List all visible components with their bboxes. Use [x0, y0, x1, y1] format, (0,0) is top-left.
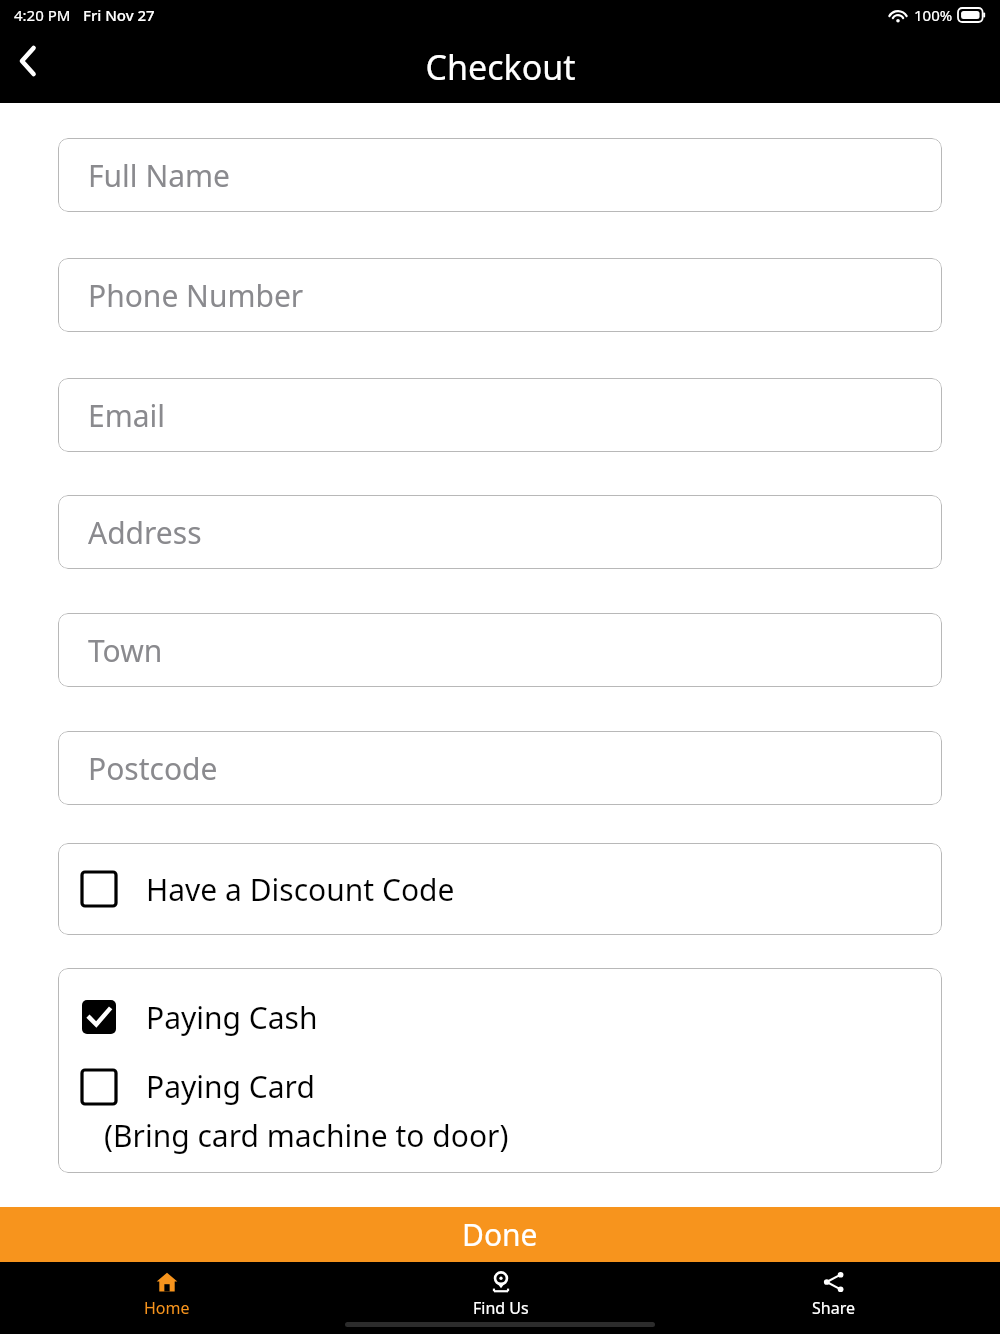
button[interactable]: Done [0, 1207, 1000, 1262]
staticText: Fri Nov 27 [83, 5, 155, 25]
staticText: Postcode [88, 748, 218, 789]
button[interactable]: Share [667, 1262, 1000, 1318]
staticText: Find Us [473, 1297, 529, 1318]
staticText: 4:20 PM [14, 5, 71, 25]
button[interactable]: Address [58, 495, 942, 569]
button[interactable]: Full Name [58, 138, 942, 212]
button[interactable]: Home [0, 1262, 334, 1318]
button[interactable]: Find Us [334, 1262, 667, 1318]
button[interactable]: Email [58, 378, 942, 452]
button[interactable]: Have a Discount Code [58, 843, 942, 935]
button[interactable]: Phone Number [58, 258, 942, 332]
staticText: Address [88, 512, 202, 553]
staticText: (Bring card machine to door) [104, 1115, 509, 1156]
staticText: Share [812, 1297, 855, 1318]
staticText: Email [88, 395, 166, 436]
staticText: Checkout [425, 44, 576, 90]
button[interactable]: Back [0, 33, 56, 89]
button[interactable]: Town [58, 613, 942, 687]
button[interactable]: Paying Card [58, 1066, 942, 1156]
button[interactable]: Paying Cash [58, 968, 942, 1066]
staticText: Full Name [88, 155, 230, 196]
staticText: Home [144, 1297, 190, 1318]
staticText: Paying Cash [146, 997, 318, 1038]
staticText: 100% [914, 5, 953, 25]
staticText: Phone Number [88, 275, 304, 316]
staticText: Have a Discount Code [146, 869, 455, 910]
button[interactable]: Postcode [58, 731, 942, 805]
staticText: Done [462, 1214, 538, 1255]
staticText: Town [88, 630, 163, 671]
staticText: Paying Card [146, 1066, 315, 1107]
